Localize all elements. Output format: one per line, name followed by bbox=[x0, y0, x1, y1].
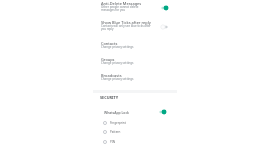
button[interactable]: Fingerprint bbox=[103, 118, 177, 127]
staticText: Pattern bbox=[110, 130, 121, 134]
staticText: Change privacy settings bbox=[101, 77, 134, 81]
button[interactable]: Show Blue Ticks after reply, off bbox=[160, 24, 169, 30]
button[interactable]: Anti-Delete Messages bbox=[99, 0, 177, 14]
button[interactable]: PIN bbox=[103, 137, 177, 146]
staticText: Anti-Delete Messages bbox=[101, 1, 142, 6]
staticText: Broadcasts bbox=[101, 73, 122, 78]
button[interactable]: WhatsApp Lock, on bbox=[158, 109, 167, 115]
staticText: Contacts bbox=[101, 41, 118, 46]
staticText: Groups bbox=[101, 57, 115, 62]
staticText: WhatsApp Lock bbox=[104, 110, 129, 115]
staticText: Show Blue Ticks after reply bbox=[101, 20, 151, 25]
button[interactable]: Anti-Delete Messages, on bbox=[160, 5, 169, 11]
staticText: Change privacy settings bbox=[101, 45, 134, 49]
staticText: Fingerprint bbox=[110, 121, 126, 125]
button[interactable]: Contacts bbox=[99, 39, 177, 51]
button[interactable]: Pattern bbox=[103, 127, 177, 136]
staticText: Other people cannot delete messages for … bbox=[101, 5, 139, 12]
button[interactable]: WhatsApp Lock bbox=[103, 107, 177, 117]
staticText: PIN bbox=[110, 140, 116, 144]
staticText: SECURITY bbox=[100, 95, 119, 100]
staticText: Change privacy settings bbox=[101, 61, 134, 65]
button[interactable]: Show Blue Ticks after reply bbox=[99, 18, 177, 33]
button[interactable]: Broadcasts bbox=[99, 71, 177, 83]
staticText: Contacts will only see blue ticks after … bbox=[101, 24, 151, 31]
button[interactable]: Groups bbox=[99, 55, 177, 67]
